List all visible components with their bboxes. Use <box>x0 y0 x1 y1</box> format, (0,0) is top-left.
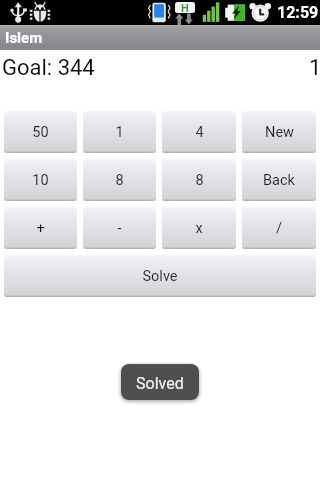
staticText: Goal: 344 <box>2 55 95 79</box>
staticText: 50 <box>32 124 49 141</box>
button[interactable]: / <box>242 207 316 249</box>
button[interactable]: Solve <box>4 255 316 297</box>
staticText: 4 <box>195 124 204 141</box>
staticText: Back <box>263 172 295 189</box>
staticText: 8 <box>115 172 124 189</box>
staticText: New <box>265 124 294 141</box>
button[interactable]: 4 <box>162 111 236 153</box>
staticText: Islem <box>5 29 43 47</box>
staticText: 10 <box>32 172 49 189</box>
button[interactable]: 10 <box>4 159 77 201</box>
staticText: H <box>181 2 189 13</box>
staticText: x <box>195 220 203 237</box>
button[interactable]: + <box>4 207 77 249</box>
button[interactable]: 50 <box>4 111 77 153</box>
button[interactable]: New <box>242 111 316 153</box>
staticText: Solved <box>136 374 184 393</box>
button[interactable]: x <box>162 207 236 249</box>
staticText: 8 <box>195 172 204 189</box>
staticText: 12:59 <box>277 3 319 22</box>
button[interactable]: Back <box>242 159 316 201</box>
button[interactable]: 8 <box>162 159 236 201</box>
staticText: 1 <box>115 124 124 141</box>
button[interactable]: 1 <box>83 111 156 153</box>
staticText: - <box>117 220 122 237</box>
staticText: 1 <box>309 55 320 79</box>
staticText: + <box>36 220 45 237</box>
button[interactable]: - <box>83 207 156 249</box>
staticText: / <box>276 220 282 237</box>
staticText: Solve <box>142 268 178 285</box>
button[interactable]: 8 <box>83 159 156 201</box>
